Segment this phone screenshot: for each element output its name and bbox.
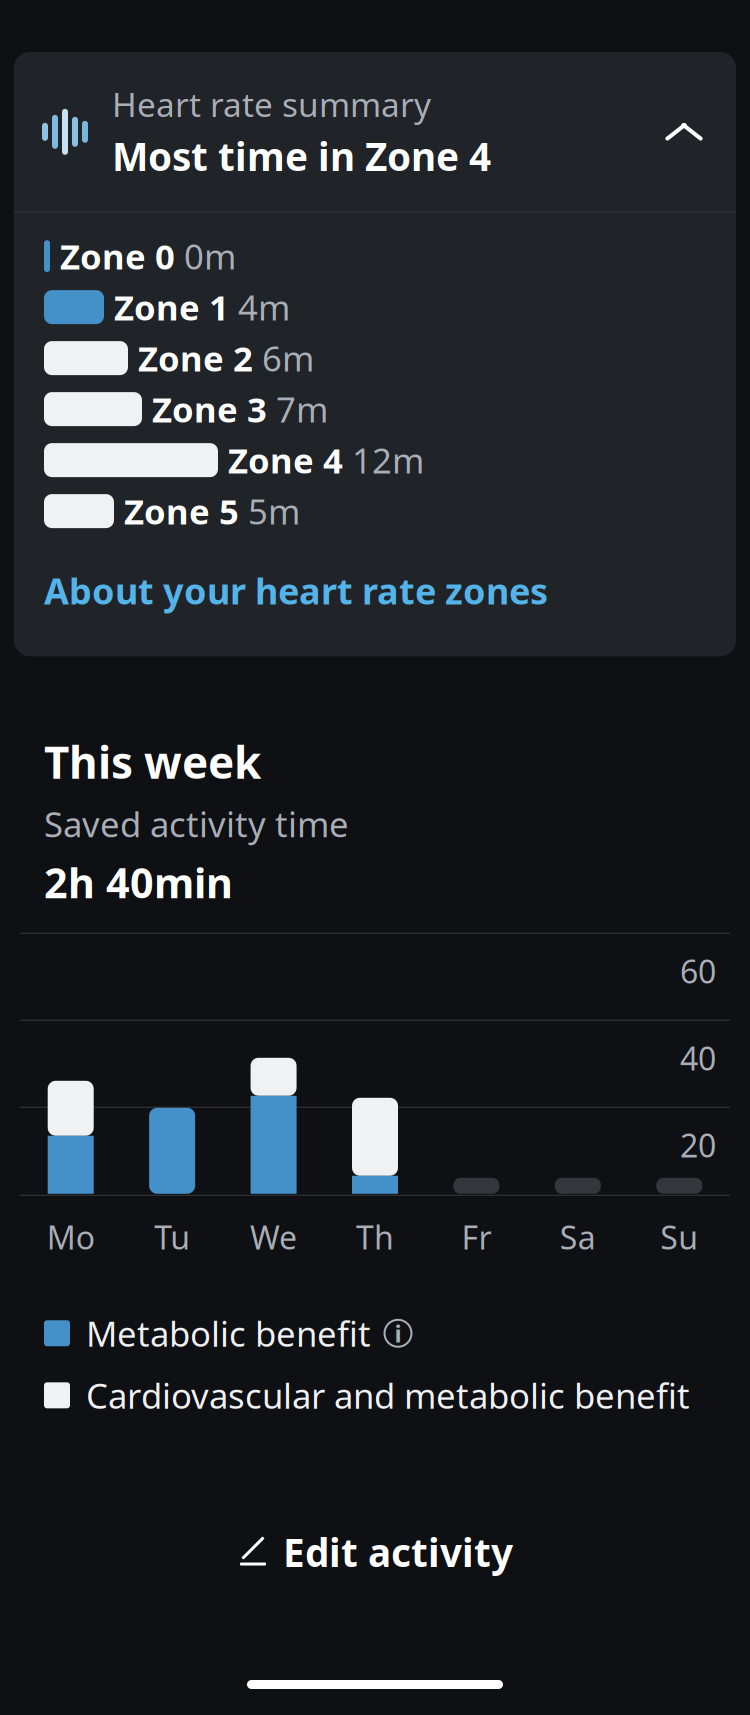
staticText: Tu [154,1216,190,1258]
staticText: Mo [47,1216,95,1258]
staticText: Zone 3 [152,386,267,432]
staticText: Th [356,1216,394,1258]
staticText: Zone 0 [60,233,175,279]
staticText: Zone 1 [114,284,229,330]
staticText: i [394,1317,401,1349]
staticText: Most time in Zone 4 [112,130,491,182]
staticText: Heart rate summary [112,82,431,126]
staticText: Zone 5 [124,488,239,534]
staticText: Su [660,1216,698,1258]
staticText: We [250,1216,297,1258]
staticText: Metabolic benefit [86,1310,371,1356]
staticText: 20 [680,1124,716,1166]
staticText: Fr [461,1216,491,1258]
button[interactable]: Edit activity [207,1506,543,1598]
staticText: About your heart rate zones [44,567,548,614]
staticText: 5m [248,488,300,534]
staticText: Edit activity [283,1526,513,1578]
button[interactable]: About your heart rate zones [44,537,548,620]
button[interactable]: About metabolic benefit [381,1316,415,1350]
staticText: 60 [680,950,716,992]
staticText: 12m [352,437,424,483]
button[interactable]: Collapse heart rate summary [14,52,736,212]
staticText: Cardiovascular and metabolic benefit [86,1372,690,1418]
staticText: 40 [680,1037,716,1079]
staticText: 4m [238,284,290,330]
staticText: 0m [184,233,236,279]
staticText: Zone 2 [138,335,253,381]
staticText: 2h 40min [44,855,233,910]
staticText: Sa [560,1216,596,1258]
staticText: Saved activity time [44,801,349,847]
staticText: This week [44,732,261,791]
staticText: Zone 4 [228,437,343,483]
staticText: 6m [262,335,314,381]
staticText: 7m [276,386,328,432]
